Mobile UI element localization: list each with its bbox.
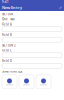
staticText: Field A <box>2 23 12 26</box>
staticText: New Entry <box>2 5 22 10</box>
staticText: SECTION <box>2 12 13 16</box>
button[interactable]: Item <box>36 75 51 89</box>
staticText: One <box>2 17 8 21</box>
staticText: SOMETHING ELSE <box>2 70 22 73</box>
button[interactable]: Item <box>19 75 34 89</box>
button[interactable]: Done <box>59 5 62 10</box>
staticText: Two <box>10 17 15 21</box>
staticText: Field C <box>2 49 12 52</box>
staticText: 9:41 <box>2 0 9 4</box>
staticText: Field B <box>2 33 12 37</box>
staticText: Field D <box>2 59 12 63</box>
staticText: ✓ <box>59 5 62 10</box>
staticText: SECTION 2 <box>2 44 16 47</box>
button[interactable]: Item <box>2 75 17 89</box>
